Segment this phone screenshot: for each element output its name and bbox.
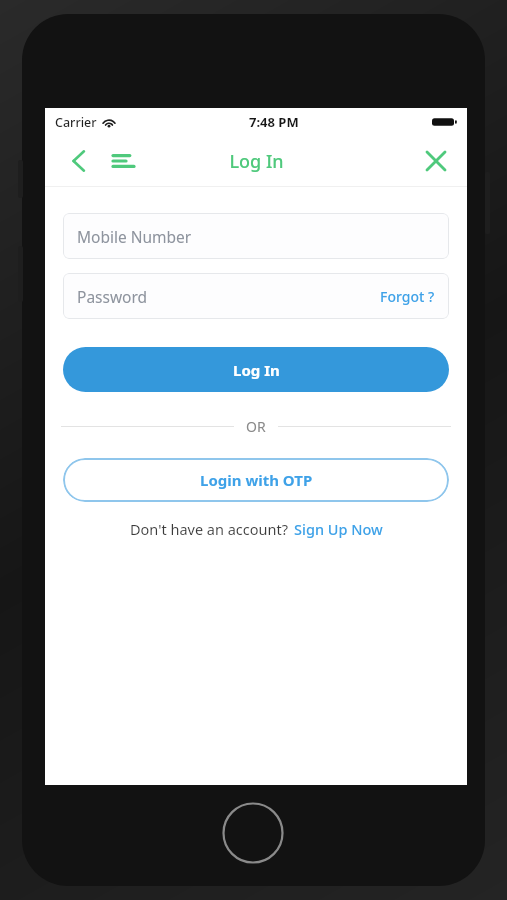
staticText: Log In: [229, 149, 284, 174]
staticText: Carrier: [55, 114, 97, 131]
button[interactable]: Menu: [103, 141, 143, 181]
button[interactable]: Login with OTP: [63, 458, 449, 502]
button[interactable]: Sign Up Now: [294, 519, 383, 539]
staticText: Sign Up Now: [294, 519, 383, 539]
button[interactable]: Forgot ?: [380, 287, 435, 306]
staticText: Log In: [233, 360, 280, 380]
staticText: Don't have an account?: [130, 519, 288, 539]
button[interactable]: Back: [58, 141, 98, 181]
staticText: Password: [77, 286, 148, 307]
button[interactable]: Close: [415, 140, 457, 182]
button[interactable]: Log In: [63, 347, 449, 392]
button[interactable]: Mobile Number: [63, 213, 449, 259]
staticText: Mobile Number: [77, 226, 192, 247]
staticText: OR: [246, 417, 266, 436]
staticText: Forgot ?: [380, 287, 435, 306]
staticText: Login with OTP: [200, 470, 313, 490]
button[interactable]: Password: [63, 273, 449, 319]
staticText: 7:48 PM: [249, 113, 299, 131]
